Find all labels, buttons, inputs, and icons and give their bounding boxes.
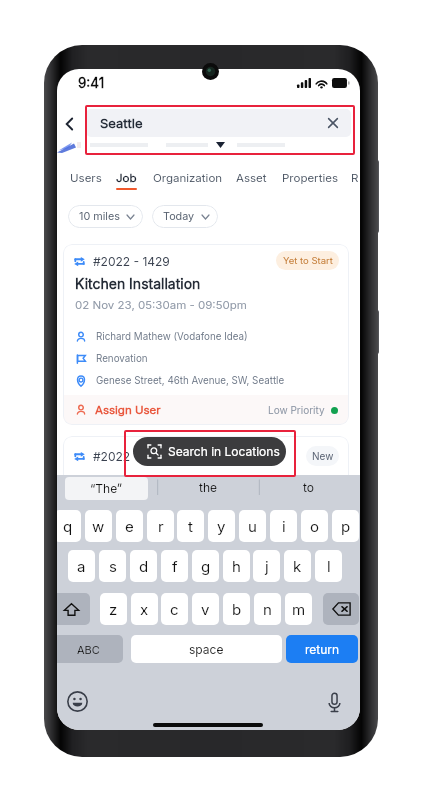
- button[interactable]: n: [254, 593, 281, 625]
- staticText: l: [327, 557, 331, 575]
- button[interactable]: c: [161, 593, 188, 625]
- staticText: x: [140, 600, 149, 618]
- staticText: t: [188, 517, 193, 535]
- button[interactable]: j: [253, 550, 280, 582]
- button[interactable]: e: [116, 510, 143, 542]
- staticText: k: [293, 557, 302, 575]
- staticText: n: [263, 600, 272, 618]
- staticText: return: [305, 642, 340, 657]
- button[interactable]: Seattle: [86, 109, 351, 137]
- staticText: z: [109, 600, 118, 618]
- staticText: Search in Locations: [168, 444, 280, 459]
- button[interactable]: v: [192, 593, 219, 625]
- staticText: to: [303, 480, 315, 495]
- staticText: c: [170, 600, 179, 618]
- staticText: Genese Street, 46th Avenue, SW, Seattle: [96, 375, 285, 387]
- button[interactable]: ABC: [57, 635, 123, 663]
- button[interactable]: o: [301, 510, 328, 542]
- button[interactable]: #2022 - 1430: [63, 436, 349, 486]
- staticText: p: [341, 517, 351, 535]
- staticText: Yet to Start: [283, 255, 333, 266]
- staticText: Users: [70, 171, 102, 185]
- button[interactable]: m: [285, 593, 312, 625]
- staticText: d: [139, 557, 149, 575]
- button[interactable]: space: [131, 635, 282, 663]
- staticText: h: [232, 557, 241, 575]
- button[interactable]: Search in Locations: [133, 437, 286, 466]
- button[interactable]: return: [286, 635, 358, 663]
- button[interactable]: g: [192, 550, 219, 582]
- staticText: New: [312, 450, 334, 462]
- button[interactable]: 10 miles: [68, 205, 143, 228]
- button[interactable]: Dictation: [327, 692, 342, 713]
- button[interactable]: r: [147, 510, 174, 542]
- staticText: Asset: [236, 171, 267, 185]
- staticText: Job: [116, 171, 137, 185]
- button[interactable]: Properties: [278, 169, 342, 197]
- button[interactable]: the: [158, 475, 258, 500]
- staticText: q: [63, 517, 73, 535]
- staticText: Seattle: [100, 115, 143, 131]
- staticText: u: [248, 517, 257, 535]
- staticText: e: [125, 517, 134, 535]
- button[interactable]: R: [346, 169, 360, 197]
- button[interactable]: u: [239, 510, 266, 542]
- button[interactable]: q: [57, 510, 81, 542]
- staticText: a: [77, 557, 86, 575]
- button[interactable]: t: [177, 510, 204, 542]
- staticText: 02 Nov 23, 05:30am - 09:50pm: [75, 298, 247, 312]
- button[interactable]: i: [270, 510, 297, 542]
- staticText: “The”: [90, 481, 123, 496]
- button[interactable]: to: [259, 475, 359, 500]
- staticText: i: [282, 517, 286, 535]
- button[interactable]: Users: [66, 169, 105, 197]
- staticText: y: [217, 517, 226, 535]
- staticText: Organization: [153, 171, 223, 185]
- button[interactable]: Organization: [147, 169, 228, 197]
- button[interactable]: p: [332, 510, 359, 542]
- button[interactable]: h: [223, 550, 250, 582]
- button[interactable]: Emoji keyboard: [67, 691, 88, 712]
- button[interactable]: Back: [59, 113, 81, 135]
- button[interactable]: [323, 593, 359, 625]
- button[interactable]: [57, 593, 90, 625]
- button[interactable]: b: [223, 593, 250, 625]
- staticText: Kitchen Installation: [75, 275, 201, 292]
- staticText: space: [189, 642, 224, 657]
- button[interactable]: Today: [152, 205, 218, 228]
- staticText: o: [310, 517, 319, 535]
- staticText: w: [92, 517, 105, 535]
- staticText: #2022 - 1430: [93, 449, 171, 464]
- button[interactable]: Job: [111, 169, 141, 197]
- staticText: Low Priority: [268, 404, 325, 416]
- staticText: v: [201, 600, 210, 618]
- staticText: j: [265, 557, 269, 575]
- button[interactable]: d: [130, 550, 157, 582]
- button[interactable]: z: [100, 593, 127, 625]
- staticText: Today: [163, 210, 195, 223]
- staticText: #2022 - 1429: [93, 254, 170, 269]
- button[interactable]: f: [161, 550, 188, 582]
- button[interactable]: k: [284, 550, 311, 582]
- button[interactable]: y: [208, 510, 235, 542]
- button[interactable]: “The”: [65, 477, 148, 500]
- staticText: m: [292, 600, 306, 618]
- staticText: 9:41: [78, 75, 105, 91]
- staticText: Renovation: [96, 353, 148, 365]
- staticText: 10 miles: [79, 210, 120, 223]
- button[interactable]: s: [99, 550, 126, 582]
- button[interactable]: Clear search: [324, 114, 342, 132]
- staticText: g: [201, 557, 211, 575]
- button[interactable]: Asset: [231, 169, 272, 197]
- staticText: ABC: [77, 643, 100, 656]
- button[interactable]: l: [315, 550, 342, 582]
- staticText: the: [199, 480, 218, 495]
- button[interactable]: x: [131, 593, 158, 625]
- button[interactable]: w: [85, 510, 112, 542]
- button[interactable]: #2022 - 1429: [63, 244, 349, 425]
- staticText: b: [232, 600, 242, 618]
- button[interactable]: a: [68, 550, 95, 582]
- staticText: s: [109, 557, 117, 575]
- staticText: f: [172, 557, 178, 575]
- staticText: Properties: [282, 171, 338, 185]
